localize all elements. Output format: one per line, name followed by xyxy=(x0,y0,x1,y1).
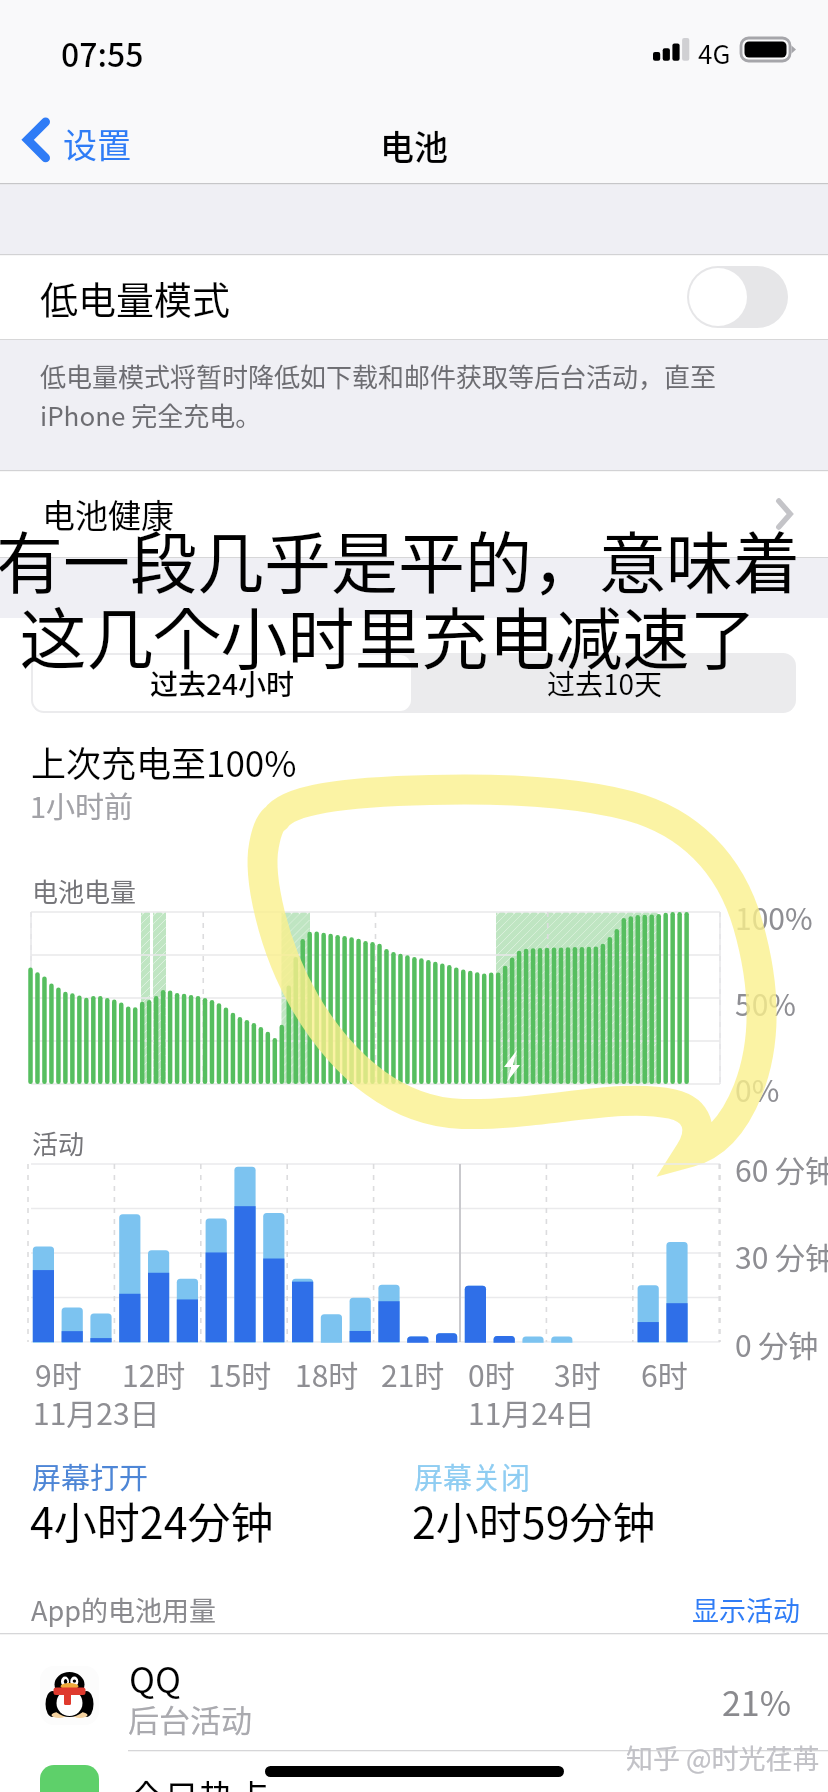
staticText: 知乎 @时光荏苒 xyxy=(626,1738,820,1777)
staticText: QQ xyxy=(129,1652,181,1703)
staticText: 4G xyxy=(698,34,731,72)
staticText: 有一段几乎是平的，意味着 xyxy=(0,510,808,607)
staticText: 屏幕关闭 xyxy=(414,1455,531,1497)
button[interactable]: QQ xyxy=(0,1634,828,1750)
staticText: 12时 xyxy=(122,1352,186,1395)
staticText: 30 分钟 xyxy=(735,1234,828,1277)
staticText: 1小时前 xyxy=(30,784,134,826)
staticText: 11月24日 xyxy=(468,1390,595,1433)
staticText: 0 分钟 xyxy=(735,1322,819,1365)
staticText: 设置 xyxy=(63,119,131,168)
staticText: 低电量模式将暂时降低如下载和邮件获取等后台活动，直至 iPhone 完全充电。 xyxy=(40,357,760,434)
staticText: 这几个小时里充电减速了 xyxy=(0,586,798,683)
staticText: 电池电量 xyxy=(32,872,137,910)
staticText: 电池健康 xyxy=(42,490,174,538)
staticText: 21% xyxy=(722,1677,792,1726)
staticText: 6时 xyxy=(641,1352,688,1395)
staticText: 3时 xyxy=(554,1352,601,1395)
staticText: 活动 xyxy=(32,1124,85,1162)
staticText: 今日热点 xyxy=(129,1770,270,1792)
staticText: 15时 xyxy=(208,1352,272,1395)
staticText: App的电池用量 xyxy=(31,1590,216,1629)
staticText: 07:55 xyxy=(61,30,144,76)
staticText: 11月23日 xyxy=(33,1390,160,1433)
staticText: 显示活动 xyxy=(692,1590,800,1629)
button[interactable]: 过去10天 xyxy=(413,653,796,713)
staticText: 2小时59分钟 xyxy=(412,1489,656,1551)
staticText: 50% xyxy=(735,981,796,1024)
button[interactable]: Low Power Mode toggle xyxy=(687,266,788,328)
staticText: 18时 xyxy=(295,1352,359,1395)
staticText: 0时 xyxy=(468,1352,515,1395)
button[interactable]: 显示活动 xyxy=(692,1590,800,1629)
staticText: 过去24小时 xyxy=(150,663,294,704)
staticText: 60 分钟 xyxy=(735,1147,828,1190)
button[interactable]: Back to 设置 xyxy=(18,108,143,172)
staticText: 电池 xyxy=(380,121,448,170)
staticText: 9时 xyxy=(35,1352,82,1395)
staticText: 屏幕打开 xyxy=(32,1455,149,1497)
staticText: 0% xyxy=(735,1067,780,1110)
staticText: 后台活动 xyxy=(128,1696,252,1741)
staticText: 100% xyxy=(735,895,813,938)
button[interactable]: 电池健康 xyxy=(0,471,828,557)
button[interactable]: 过去24小时 xyxy=(33,655,411,711)
staticText: 21时 xyxy=(381,1352,445,1395)
staticText: 过去10天 xyxy=(547,663,663,704)
button[interactable]: 低电量模式 xyxy=(0,255,828,339)
staticText: 4小时24分钟 xyxy=(30,1489,274,1551)
staticText: 低电量模式 xyxy=(40,270,231,325)
staticText: 上次充电至100% xyxy=(31,736,297,787)
